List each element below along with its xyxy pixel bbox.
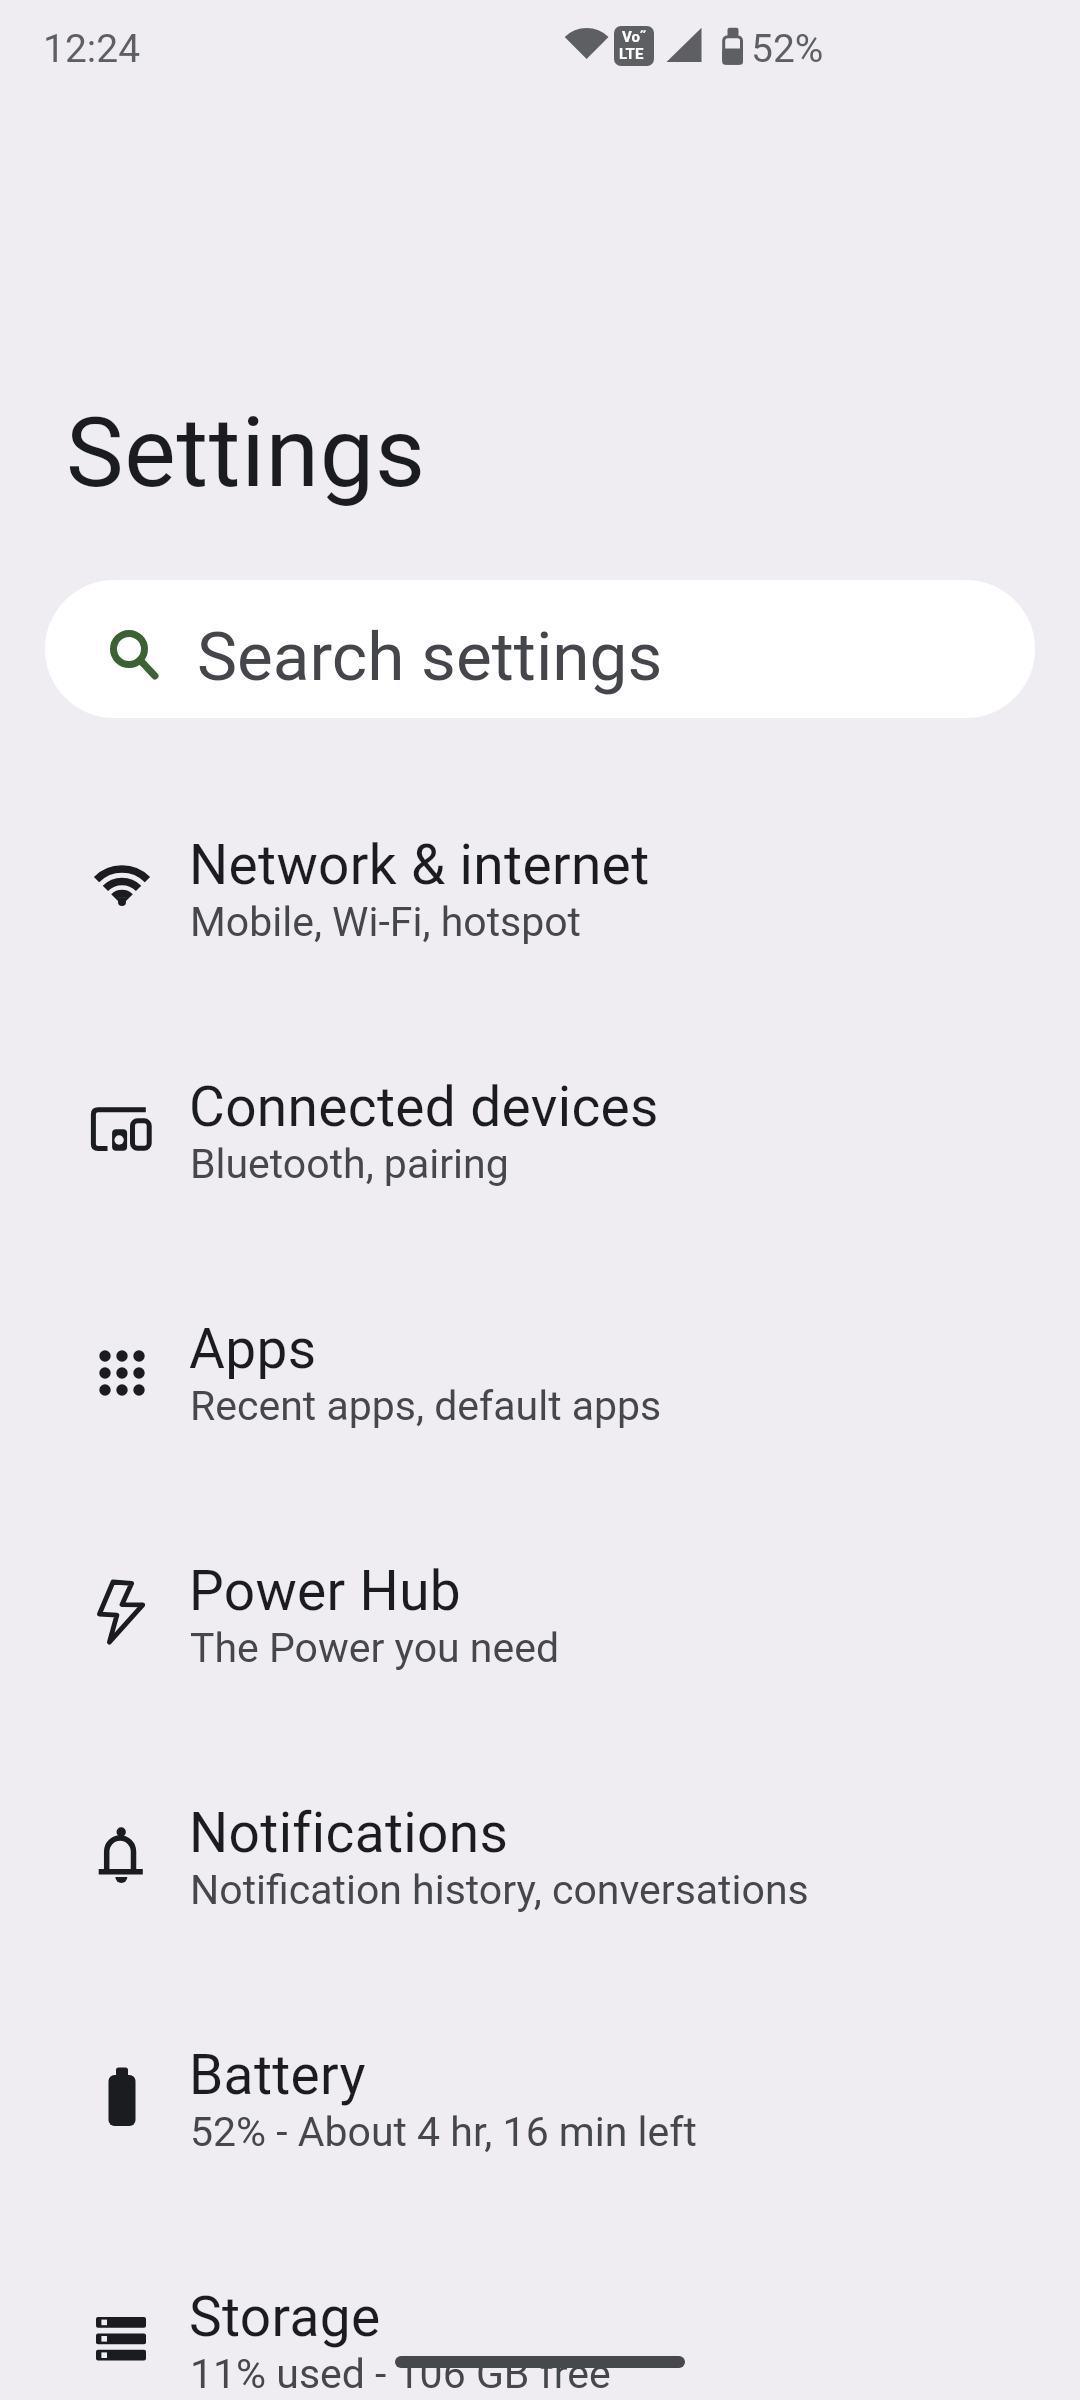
staticText: Recent apps, default apps [190,1382,662,1430]
staticText: Storage [189,2285,381,2349]
staticText: 52% - About 4 hr, 16 min left [190,2108,697,2156]
staticText: 12:24 [43,26,141,72]
button[interactable]: Network & internet [0,768,1080,1010]
button[interactable]: Notifications [0,1736,1080,1978]
staticText: Mobile, Wi-Fi, hotspot [190,898,582,946]
staticText: Settings [66,396,426,510]
staticText: Search settings [197,617,663,696]
staticText: Battery [189,2043,366,2107]
staticText: Connected devices [189,1075,659,1139]
button[interactable]: Power Hub [0,1494,1080,1736]
staticText: Network & internet [189,833,650,897]
button[interactable]: Battery [0,1978,1080,2220]
staticText: Bluetooth, pairing [190,1140,509,1188]
staticText: 11% used - 106 GB free [190,2350,611,2398]
button[interactable]: Search settings [45,580,1035,718]
staticText: Notifications [189,1801,509,1865]
staticText: The Power you need [190,1624,560,1672]
staticText: Voʺ [622,28,647,46]
staticText: LTE [619,45,644,63]
button[interactable]: Storage [0,2220,1080,2400]
staticText: Apps [189,1317,317,1381]
button[interactable]: Apps [0,1252,1080,1494]
staticText: Notification history, conversations [190,1866,809,1914]
staticText: 52% [751,26,824,72]
staticText: Power Hub [189,1559,462,1623]
button[interactable]: Connected devices [0,1010,1080,1252]
